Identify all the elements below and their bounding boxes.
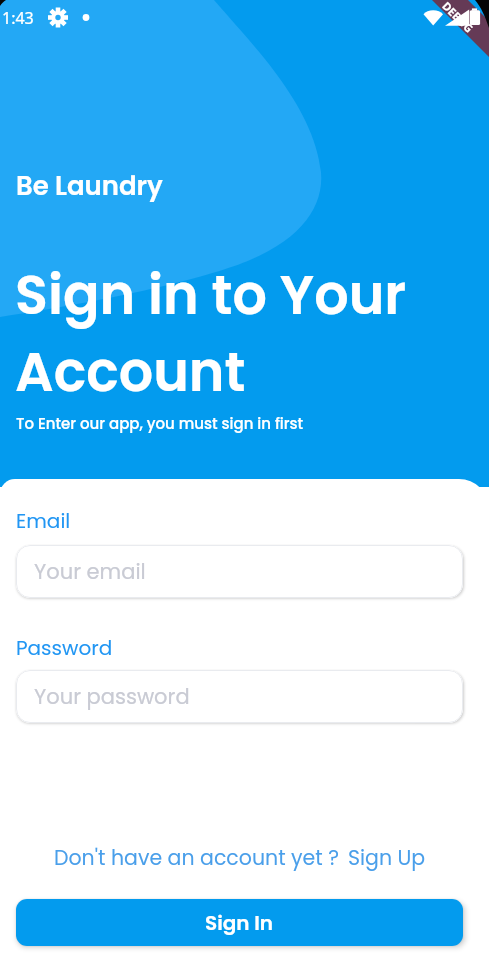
staticText: Email <box>16 507 71 535</box>
staticText: Don't have an account yet ? <box>54 843 340 872</box>
staticText: Password <box>16 634 113 662</box>
staticText: Your password <box>34 682 190 711</box>
staticText: 1:43 <box>2 7 34 29</box>
staticText: To Enter our app, you must sign in first <box>16 413 304 434</box>
button[interactable]: Your password <box>16 670 463 723</box>
staticText: Be Laundry <box>16 168 163 204</box>
button[interactable]: Sign In <box>16 899 463 946</box>
staticText: Sign In <box>205 909 274 937</box>
button[interactable]: Sign Up <box>348 843 426 872</box>
staticText: Sign in to Your Account <box>15 257 407 410</box>
button[interactable]: Your email <box>16 545 463 598</box>
staticText: Your email <box>34 557 146 586</box>
